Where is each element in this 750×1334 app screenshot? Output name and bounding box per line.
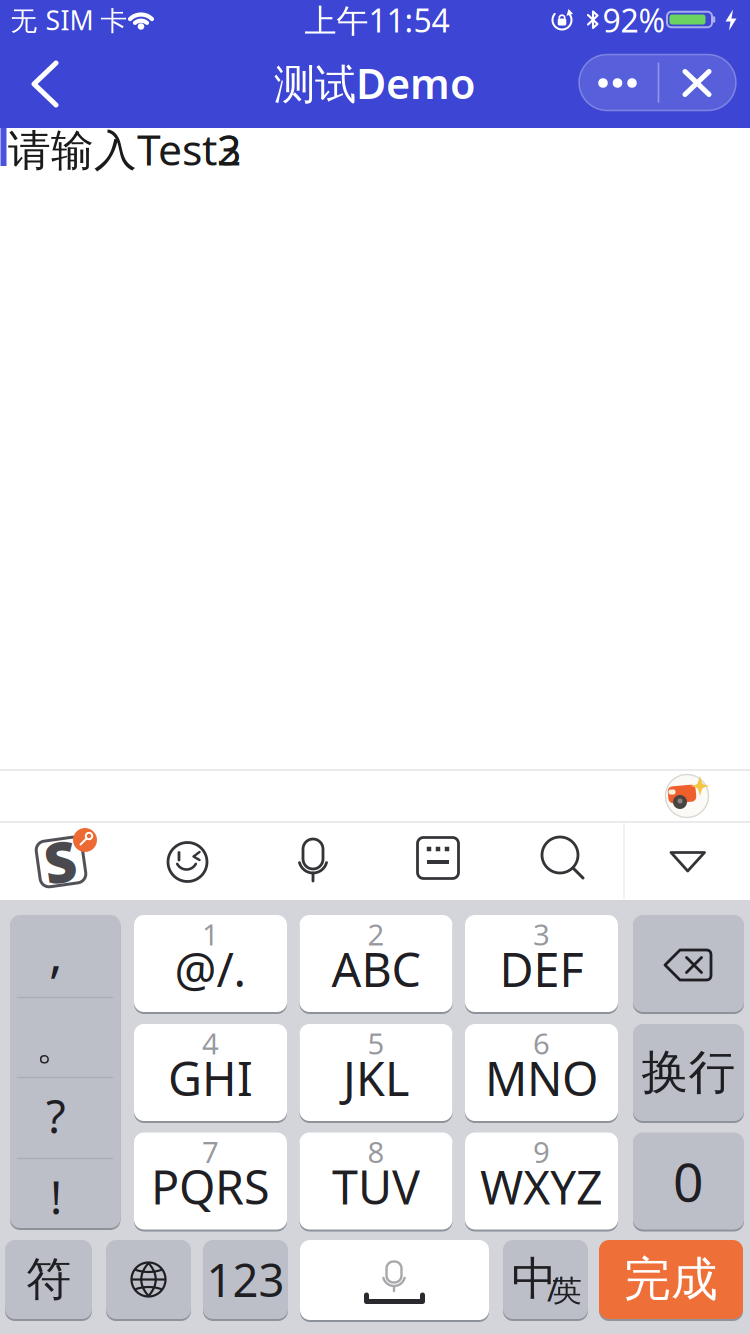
staticText: 1 [202, 914, 219, 953]
staticText: 请输入Test [8, 121, 217, 177]
staticText: @/. [174, 938, 246, 1000]
button[interactable] [663, 772, 711, 820]
button[interactable]: 123 [203, 1240, 288, 1319]
button[interactable]: 1 [134, 915, 287, 1012]
button[interactable]: 3 [465, 915, 618, 1012]
button[interactable]: 符 [5, 1240, 92, 1319]
button[interactable]: 0 [633, 1132, 744, 1229]
button[interactable] [538, 833, 588, 883]
button[interactable] [165, 840, 210, 885]
staticText: 符 [26, 1252, 71, 1307]
staticText: 完成 [624, 1251, 718, 1308]
button[interactable]: 9 [465, 1132, 618, 1229]
staticText: DEF [499, 938, 583, 1000]
staticText: 换行 [641, 1044, 735, 1101]
button[interactable]: S [28, 828, 100, 892]
button[interactable]: 7 [134, 1132, 287, 1229]
staticText: 无 SIM 卡 [10, 2, 127, 38]
staticText: 。 [36, 1021, 76, 1070]
staticText: / [547, 1268, 559, 1310]
staticText: 测试Demo [274, 56, 476, 110]
staticText: 5 [367, 1023, 384, 1062]
staticText: ! [50, 1167, 62, 1227]
staticText: 8 [367, 1132, 384, 1171]
button[interactable] [660, 843, 716, 881]
staticText: 上午11:54 [304, 0, 449, 41]
staticText: 2 [367, 914, 384, 953]
staticText: 0 [673, 1146, 704, 1216]
button[interactable] [300, 1240, 489, 1320]
button[interactable]: 6 [465, 1024, 618, 1121]
button[interactable]: 2 [299, 915, 452, 1012]
staticText: 123 [206, 1249, 284, 1310]
staticText: , [49, 918, 63, 986]
staticText: ? [46, 1086, 66, 1146]
staticText: 6 [533, 1023, 550, 1062]
button[interactable]: 5 [299, 1024, 452, 1121]
staticText: 2 [217, 121, 241, 177]
staticText: S [44, 824, 76, 898]
staticText: JKL [343, 1047, 409, 1109]
staticText: 7 [202, 1132, 219, 1171]
staticText: 中 [511, 1251, 556, 1307]
staticText: GHI [168, 1047, 253, 1109]
staticText: WXYZ [480, 1155, 603, 1217]
staticText: 3 [533, 914, 550, 953]
button[interactable]: 完成 [599, 1240, 743, 1319]
staticText: ABC [331, 938, 420, 1000]
button[interactable] [579, 54, 658, 110]
staticText: 92% [602, 0, 665, 41]
button[interactable] [106, 1240, 191, 1319]
staticText: 3 [217, 121, 241, 177]
button[interactable]: 4 [134, 1024, 287, 1121]
staticText: PQRS [151, 1155, 270, 1217]
staticText: 4 [202, 1023, 219, 1062]
button[interactable]: , [10, 915, 120, 1228]
button[interactable]: 8 [299, 1132, 452, 1229]
button[interactable]: 换行 [633, 1024, 744, 1121]
button[interactable] [633, 915, 744, 1012]
button[interactable] [658, 54, 736, 110]
button[interactable]: 中 [503, 1240, 588, 1319]
button[interactable] [290, 835, 336, 885]
button[interactable] [20, 56, 70, 112]
staticText: TUV [332, 1155, 420, 1217]
staticText: 9 [533, 1132, 550, 1171]
staticText: MNO [485, 1047, 598, 1109]
button[interactable] [415, 835, 461, 881]
staticText: 英 [552, 1273, 581, 1309]
